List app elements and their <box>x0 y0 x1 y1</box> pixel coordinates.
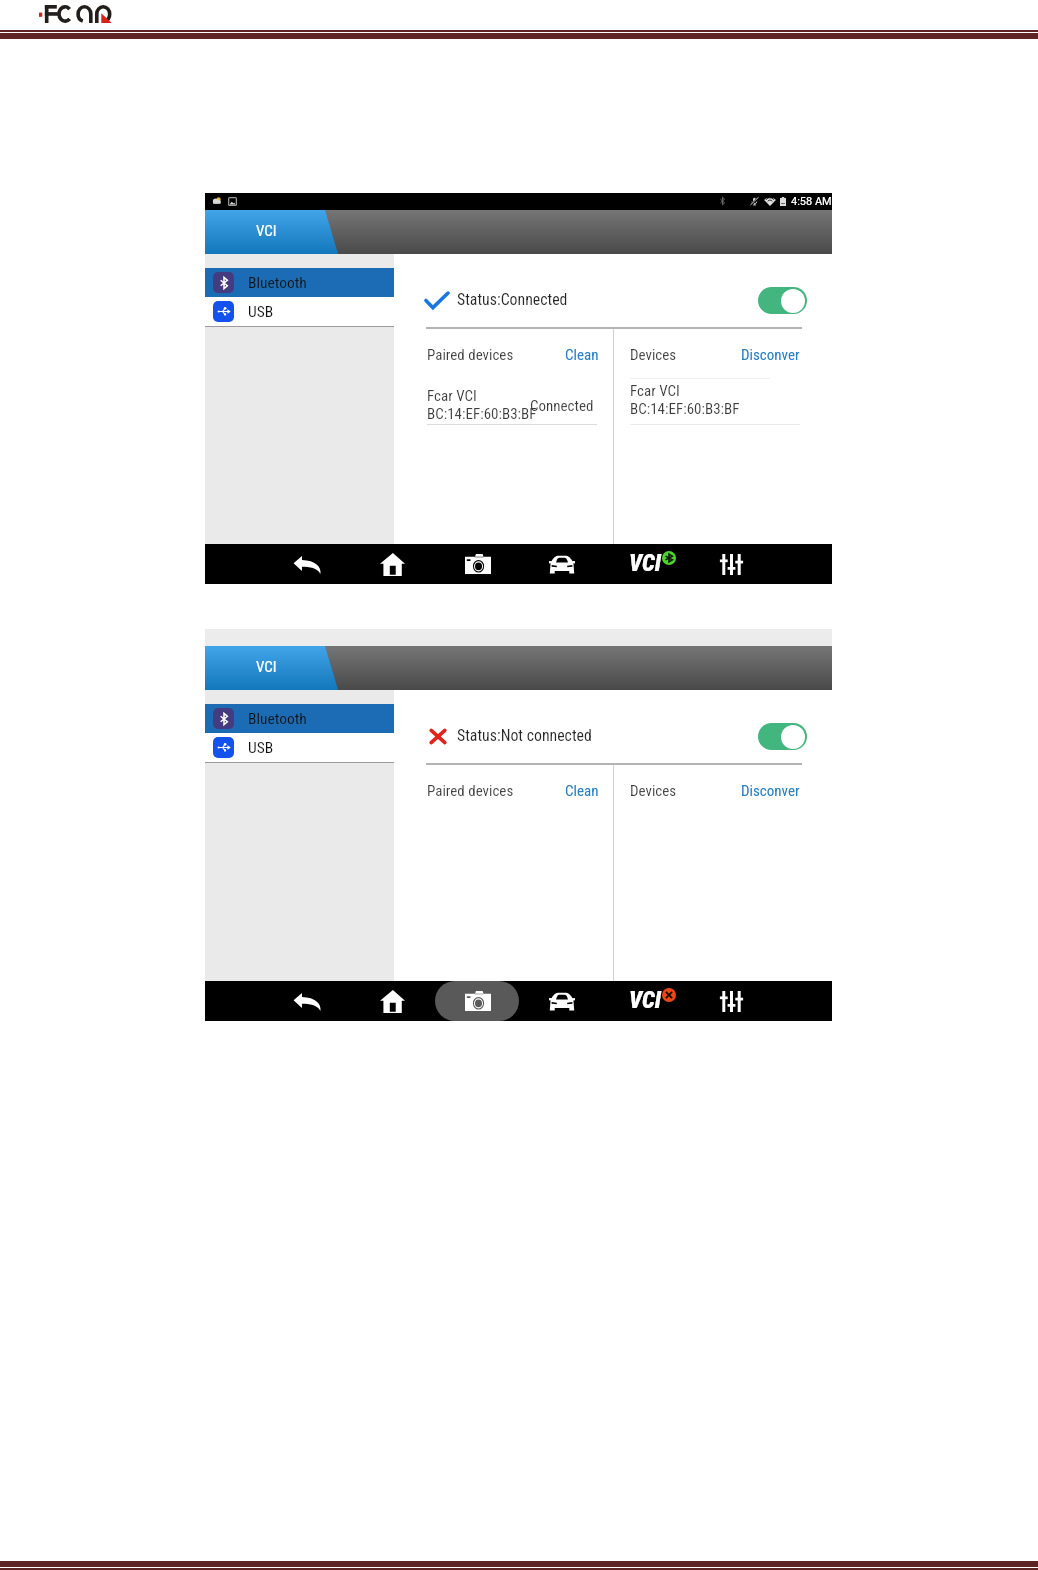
button[interactable]: VCI <box>630 981 680 1021</box>
staticText: VCI <box>256 222 277 240</box>
staticText: VCI <box>629 987 661 1014</box>
button[interactable]: Back <box>284 544 330 584</box>
button[interactable]: VCI <box>205 646 331 690</box>
staticText: Paired devices <box>427 346 514 364</box>
staticText: Devices <box>630 782 677 800</box>
button[interactable]: Bluetooth switch <box>758 723 807 750</box>
button[interactable]: Settings <box>708 981 754 1021</box>
staticText: Status:Connected <box>457 290 568 309</box>
button[interactable]: Clean <box>565 782 599 800</box>
button[interactable]: VCI <box>205 210 331 254</box>
staticText: Fcar VCI <box>630 382 680 400</box>
staticText: VCI <box>629 550 661 577</box>
button[interactable]: Vehicle <box>539 544 585 584</box>
staticText: Devices <box>630 346 677 364</box>
staticText: VCI <box>256 658 277 676</box>
staticText: Disconver <box>741 346 800 364</box>
button[interactable]: Screenshot <box>455 544 501 584</box>
staticText: Clean <box>565 346 599 364</box>
button[interactable]: Bluetooth <box>205 268 394 297</box>
staticText: 4:58 AM <box>791 195 832 208</box>
staticText: USB <box>248 303 274 321</box>
staticText: Bluetooth <box>248 274 307 292</box>
button[interactable]: Bluetooth switch <box>758 287 807 314</box>
staticText: Clean <box>565 782 599 800</box>
button[interactable]: USB <box>205 733 394 762</box>
staticText: USB <box>248 739 274 757</box>
button[interactable]: Bluetooth <box>205 704 394 733</box>
button[interactable]: USB <box>205 297 394 326</box>
staticText: Bluetooth <box>248 710 307 728</box>
button[interactable]: Back <box>284 981 330 1021</box>
staticText: BC:14:EF:60:B3:BF <box>427 405 537 423</box>
staticText: BC:14:EF:60:B3:BF <box>630 400 740 418</box>
button[interactable]: Fcar VCI <box>394 387 613 425</box>
button[interactable]: Vehicle <box>539 981 585 1021</box>
button[interactable]: VCI <box>630 544 680 584</box>
staticText: Paired devices <box>427 782 514 800</box>
staticText: Disconver <box>741 782 800 800</box>
button[interactable]: Settings <box>708 544 754 584</box>
button[interactable]: Clean <box>565 346 599 364</box>
staticText: Status:Not connected <box>457 726 592 745</box>
button[interactable]: Home <box>369 981 415 1021</box>
staticText: Connected <box>530 397 594 415</box>
staticText: Fcar VCI <box>427 387 477 405</box>
button[interactable]: Home <box>369 544 415 584</box>
button[interactable]: Fcar VCI <box>614 382 832 422</box>
button[interactable]: Screenshot <box>455 981 501 1021</box>
button[interactable]: Disconver <box>741 346 800 364</box>
button[interactable]: Disconver <box>741 782 800 800</box>
